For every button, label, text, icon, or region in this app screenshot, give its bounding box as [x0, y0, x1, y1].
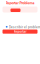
staticText: Reportar Problema	[5, 1, 34, 5]
staticText: Describir el problema	[9, 25, 40, 29]
button[interactable]: Reportar	[2, 29, 37, 34]
staticText: Reportar	[13, 30, 26, 33]
